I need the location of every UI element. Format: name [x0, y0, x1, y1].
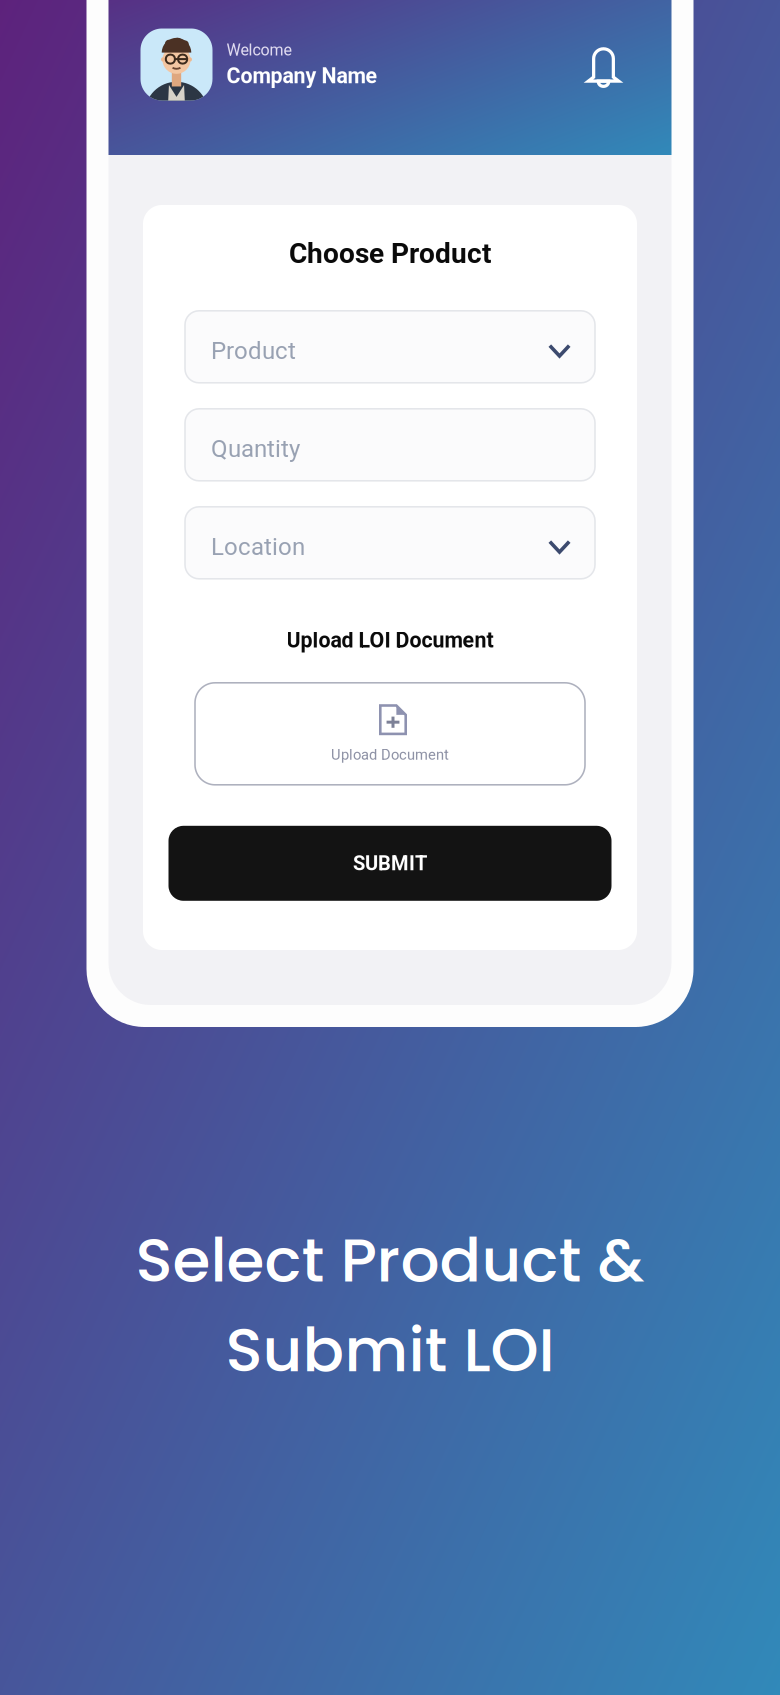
- staticText: Location: [211, 533, 305, 561]
- button[interactable]: Quantity: [185, 409, 595, 481]
- staticText: Choose Product: [289, 237, 491, 270]
- staticText: Upload Document: [331, 746, 449, 763]
- staticText: Company Name: [226, 63, 377, 88]
- button[interactable]: Upload Document: [195, 683, 585, 785]
- staticText: Upload LOI Document: [286, 628, 493, 653]
- button[interactable]: Product: [185, 311, 595, 383]
- button[interactable]: SUBMIT: [168, 826, 611, 901]
- staticText: Quantity: [211, 435, 300, 463]
- button[interactable]: Notifications: [577, 38, 629, 90]
- button[interactable]: Location: [185, 507, 595, 579]
- staticText: Welcome: [226, 41, 291, 59]
- staticText: Select Product &: [135, 1217, 644, 1303]
- staticText: Submit LOI: [225, 1307, 554, 1393]
- staticText: Product: [211, 337, 296, 365]
- staticText: SUBMIT: [353, 852, 427, 875]
